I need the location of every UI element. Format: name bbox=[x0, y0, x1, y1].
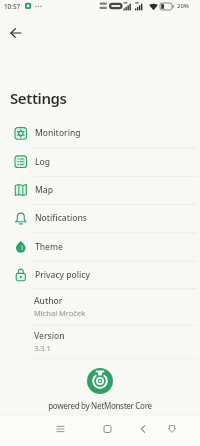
staticText: 10:57 bbox=[4, 2, 21, 11]
staticText: Settings bbox=[10, 88, 67, 108]
staticText: Theme bbox=[35, 241, 63, 253]
staticText: Map bbox=[35, 184, 53, 196]
staticText: Monitoring bbox=[35, 127, 81, 139]
staticText: Michal Mroček bbox=[34, 308, 86, 318]
staticText: 20% bbox=[177, 2, 189, 10]
staticText: 3.3.1 bbox=[34, 343, 51, 353]
staticText: Author bbox=[34, 295, 63, 307]
staticText: Version bbox=[34, 330, 65, 342]
staticText: powered by NetMonster Core bbox=[0, 400, 200, 411]
staticText: Privacy policy bbox=[35, 269, 91, 281]
staticText: Notifications bbox=[35, 212, 87, 224]
staticText: Log bbox=[35, 156, 51, 168]
